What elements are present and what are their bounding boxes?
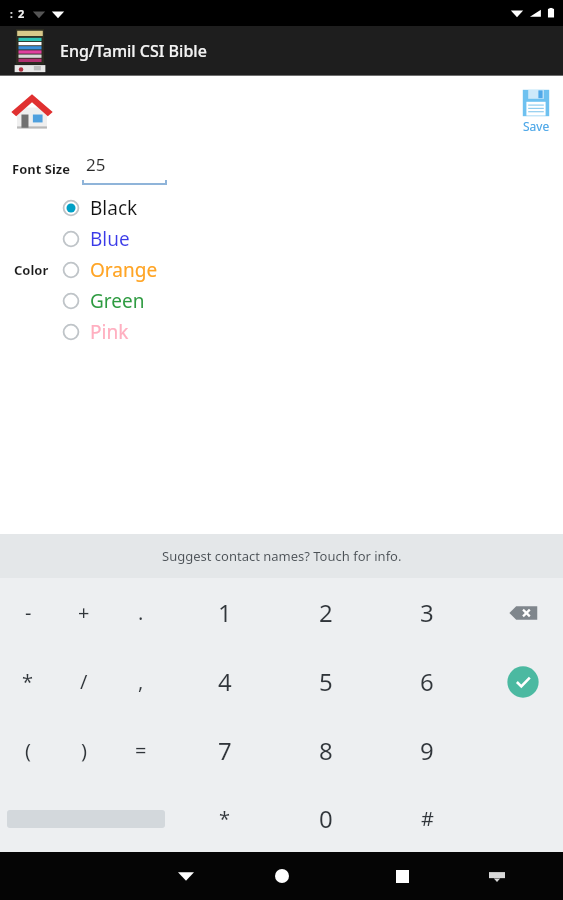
button[interactable]: * [197, 785, 253, 852]
staticText: , [138, 668, 144, 695]
button[interactable]: Blue [62, 223, 242, 254]
button[interactable]: Home [258, 852, 306, 900]
button[interactable]: , [113, 647, 169, 716]
staticText: Green [90, 288, 145, 314]
staticText: Black [90, 195, 138, 221]
button[interactable]: 25 [82, 151, 167, 187]
staticText: * [22, 668, 34, 695]
staticText: 2 [319, 596, 333, 629]
staticText: # [421, 805, 434, 832]
staticText: 25 [86, 153, 106, 176]
staticText: 2 [18, 6, 25, 21]
staticText: 8 [319, 734, 333, 767]
button[interactable]: Black [62, 192, 242, 223]
staticText: 6 [420, 665, 434, 698]
staticText: 1 [218, 596, 232, 629]
button[interactable]: 2 [298, 578, 354, 647]
button[interactable]: Backspace [495, 578, 551, 647]
staticText: 9 [420, 734, 434, 767]
staticText: Pink [90, 319, 129, 345]
staticText: Color [14, 261, 49, 279]
button[interactable]: Orange [62, 254, 242, 285]
staticText: + [78, 599, 90, 626]
button[interactable]: - [0, 578, 56, 647]
button[interactable]: . [113, 578, 169, 647]
button[interactable]: 5 [298, 647, 354, 716]
button[interactable]: 3 [399, 578, 455, 647]
button[interactable]: Save [521, 88, 551, 134]
button[interactable]: 9 [399, 716, 455, 785]
button[interactable]: = [113, 716, 169, 785]
staticText: = [135, 737, 147, 764]
button[interactable]: * [0, 647, 56, 716]
button[interactable]: 4 [197, 647, 253, 716]
staticText: . [138, 599, 144, 626]
button[interactable]: # [399, 785, 455, 852]
staticText: 4 [218, 665, 232, 698]
staticText: Suggest contact names? Touch for info. [162, 547, 402, 565]
button[interactable]: ( [0, 716, 56, 785]
staticText: Save [523, 118, 550, 134]
staticText: / [80, 668, 88, 695]
button[interactable]: Home [6, 85, 58, 137]
staticText: ( [25, 737, 31, 764]
staticText: : [10, 7, 13, 21]
staticText: - [25, 599, 32, 626]
button[interactable]: 8 [298, 716, 354, 785]
staticText: 5 [319, 665, 333, 698]
button[interactable]: Back [162, 852, 210, 900]
staticText: Orange [90, 257, 158, 283]
staticText: Eng/Tamil CSI Bible [60, 40, 207, 62]
button[interactable]: 7 [197, 716, 253, 785]
button[interactable]: / [56, 647, 112, 716]
button[interactable]: + [56, 578, 112, 647]
button[interactable]: Recent apps [378, 852, 426, 900]
button[interactable]: 0 [298, 785, 354, 852]
staticText: 3 [420, 596, 434, 629]
button[interactable]: Switch keyboard [473, 852, 521, 900]
button[interactable]: Green [62, 285, 242, 316]
staticText: Blue [90, 226, 130, 252]
button[interactable]: 6 [399, 647, 455, 716]
staticText: Font Size [12, 160, 70, 178]
button[interactable]: Enter [495, 647, 551, 716]
staticText: ) [81, 737, 87, 764]
button[interactable]: ) [56, 716, 112, 785]
button[interactable]: 1 [197, 578, 253, 647]
staticText: 7 [218, 734, 232, 767]
button[interactable]: Suggest contact names? Touch for info. [0, 534, 563, 578]
button[interactable]: Pink [62, 316, 242, 347]
staticText: * [219, 805, 231, 832]
staticText: 0 [319, 802, 333, 835]
